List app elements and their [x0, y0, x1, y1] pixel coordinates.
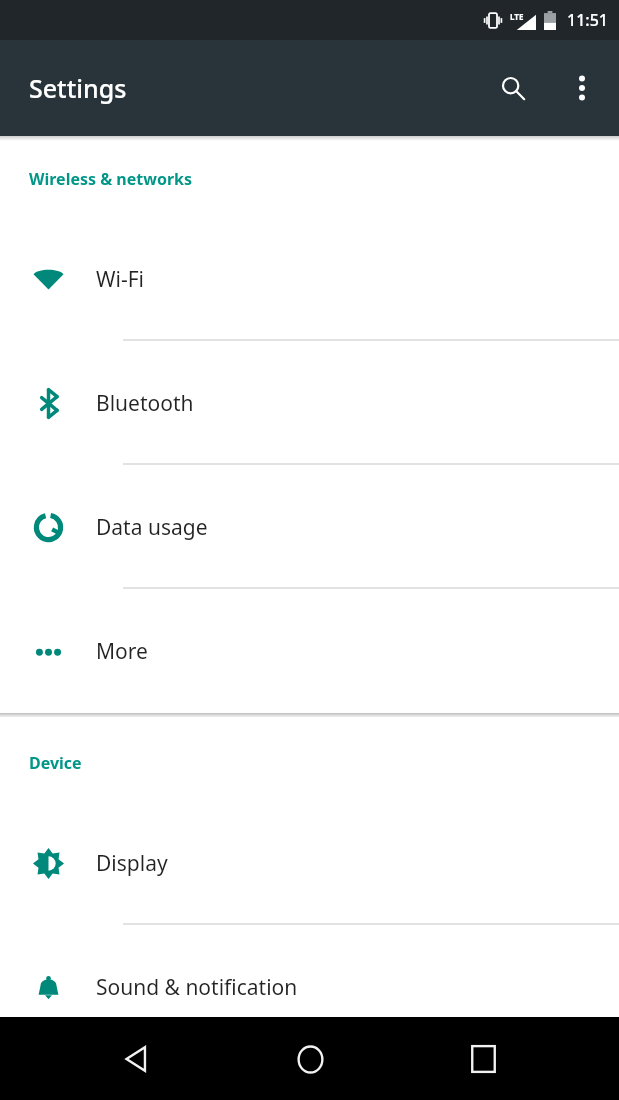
staticText: Device — [29, 752, 82, 774]
staticText: Bluetooth — [96, 389, 194, 418]
button[interactable]: Recents — [446, 1022, 520, 1096]
button[interactable]: Data usage — [0, 465, 619, 589]
staticText: Wi-Fi — [96, 265, 145, 294]
staticText: Settings — [29, 71, 127, 105]
button[interactable]: Wi-Fi — [0, 217, 619, 341]
staticText: Display — [96, 849, 168, 878]
button[interactable]: More — [0, 589, 619, 713]
staticText: Data usage — [96, 513, 208, 542]
button[interactable]: More options — [559, 65, 605, 111]
staticText: LTE — [510, 11, 524, 22]
button[interactable]: Display — [0, 801, 619, 925]
button[interactable]: Home — [273, 1022, 347, 1096]
staticText: Sound & notification — [96, 973, 298, 1002]
button[interactable]: Sound & notification — [0, 925, 619, 1049]
button[interactable]: Back — [99, 1022, 173, 1096]
staticText: 11:51 — [567, 9, 608, 31]
staticText: Wireless & networks — [29, 168, 193, 190]
button[interactable]: Search — [487, 62, 539, 114]
button[interactable]: Bluetooth — [0, 341, 619, 465]
staticText: More — [96, 637, 148, 666]
